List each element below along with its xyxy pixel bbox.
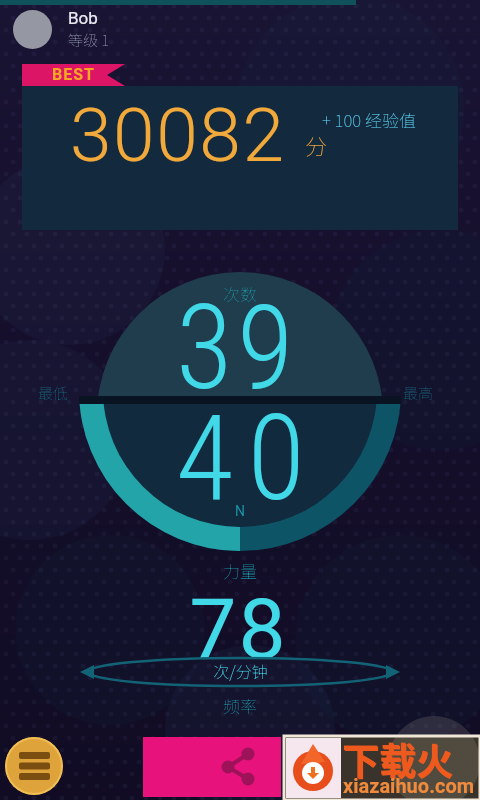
staticText: 40 — [176, 390, 319, 528]
button[interactable] — [5, 737, 63, 795]
staticText: xiazaihuo.com — [343, 774, 475, 797]
staticText: 次数 — [223, 281, 257, 306]
staticText: 最高 — [403, 382, 434, 404]
staticText: 78 — [189, 580, 288, 678]
staticText: 30082 — [70, 91, 286, 179]
staticText: N — [235, 503, 245, 519]
staticText: 频率 — [223, 693, 257, 718]
staticText: 最低 — [38, 382, 69, 404]
staticText: BEST — [52, 65, 95, 84]
staticText: 下载火 — [343, 733, 454, 787]
button[interactable] — [143, 737, 281, 797]
staticText: 等级 1 — [68, 29, 110, 51]
staticText: + 100 经验值 — [322, 107, 416, 132]
staticText: 分 — [305, 129, 328, 161]
button[interactable]: 下载火 — [284, 736, 480, 800]
staticText: 次/分钟 — [213, 659, 268, 682]
staticText: Bob — [68, 8, 98, 28]
button[interactable]: 30082 — [22, 86, 458, 230]
staticText: 下载火 — [342, 732, 453, 786]
button[interactable] — [13, 10, 52, 49]
staticText: 力量 — [223, 558, 257, 583]
staticText: 39 — [176, 280, 298, 416]
